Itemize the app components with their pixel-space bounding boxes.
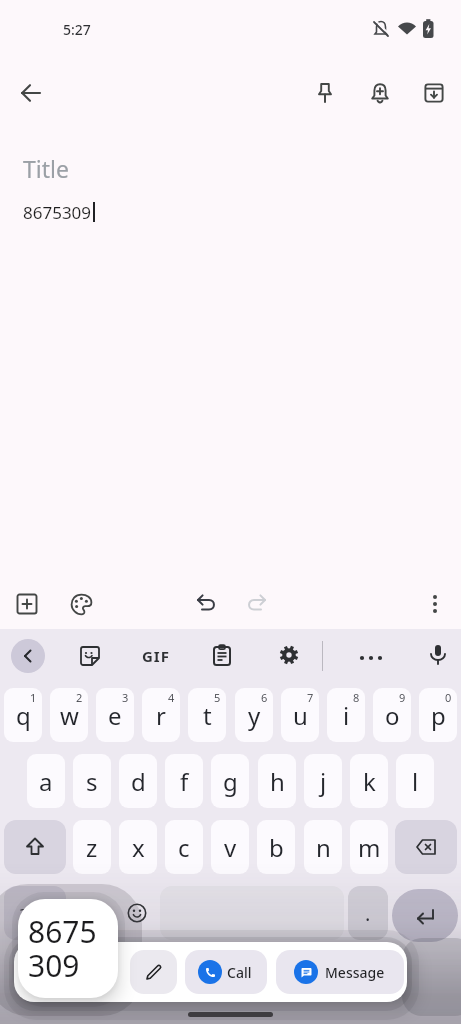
button[interactable]	[358, 645, 384, 671]
staticText: g	[223, 765, 238, 798]
staticText: q	[16, 699, 31, 732]
staticText: 5:27	[63, 20, 91, 39]
button[interactable]: a	[27, 754, 65, 808]
button[interactable]: o	[373, 688, 411, 742]
button[interactable]: r	[142, 688, 180, 742]
staticText: u	[293, 699, 308, 732]
staticText: r	[156, 699, 166, 732]
button[interactable]: y	[235, 688, 273, 742]
button[interactable]: m	[350, 820, 388, 874]
button[interactable]: p	[419, 688, 457, 742]
button[interactable]: u	[281, 688, 319, 742]
staticText: t	[203, 699, 212, 732]
staticText: 4	[168, 690, 175, 705]
button[interactable]: x	[119, 820, 157, 874]
button[interactable]: c	[165, 820, 203, 874]
staticText: e	[108, 699, 122, 732]
button[interactable]	[392, 889, 458, 942]
staticText: ?123	[20, 904, 51, 923]
staticText: j	[320, 765, 327, 798]
staticText: 5	[214, 690, 221, 705]
button[interactable]	[313, 81, 337, 105]
staticText: f	[180, 765, 189, 798]
staticText: z	[86, 831, 98, 864]
button[interactable]	[70, 593, 93, 616]
button[interactable]: g	[211, 754, 249, 808]
staticText: .	[365, 900, 371, 927]
button[interactable]: j	[304, 754, 342, 808]
button[interactable]: v	[211, 820, 249, 874]
button[interactable]	[422, 81, 446, 105]
button[interactable]	[426, 643, 450, 667]
button[interactable]	[130, 950, 177, 994]
staticText: a	[39, 765, 53, 798]
button[interactable]: Call	[185, 950, 267, 994]
staticText: x	[132, 831, 145, 864]
staticText: b	[269, 831, 284, 864]
staticText: Title	[23, 153, 69, 184]
staticText: s	[86, 765, 98, 798]
staticText: 1	[30, 690, 37, 705]
staticText: 8	[353, 690, 360, 705]
button[interactable]	[79, 645, 101, 667]
button[interactable]: f	[165, 754, 203, 808]
button[interactable]	[395, 820, 457, 874]
staticText: k	[363, 765, 376, 798]
button[interactable]: q	[4, 688, 42, 742]
button[interactable]	[211, 644, 233, 666]
staticText: ,	[90, 900, 96, 927]
button[interactable]: z	[73, 820, 111, 874]
staticText: c	[178, 831, 190, 864]
button[interactable]: n	[304, 820, 342, 874]
button[interactable]: Message	[276, 950, 404, 994]
button[interactable]: b	[257, 820, 295, 874]
staticText: 6	[261, 690, 268, 705]
staticText: 8675 309	[28, 911, 97, 985]
button[interactable]: GIF	[138, 645, 174, 667]
staticText: y	[248, 699, 261, 732]
staticText: 0	[445, 690, 452, 705]
button[interactable]	[193, 592, 217, 616]
button[interactable]	[368, 81, 392, 105]
button[interactable]	[117, 886, 157, 940]
staticText: 8675309	[23, 201, 92, 224]
button[interactable]	[423, 592, 447, 616]
staticText: d	[131, 765, 146, 798]
button[interactable]: s	[73, 754, 111, 808]
button[interactable]: l	[396, 754, 434, 808]
button[interactable]: d	[119, 754, 157, 808]
staticText: i	[343, 699, 350, 732]
staticText: h	[270, 765, 285, 798]
button[interactable]: ,	[73, 886, 113, 940]
staticText: Message	[325, 963, 385, 982]
button[interactable]: .	[348, 886, 388, 940]
staticText: w	[60, 699, 79, 732]
button[interactable]	[16, 593, 38, 615]
button[interactable]	[11, 639, 45, 673]
staticText: 2	[76, 690, 83, 705]
staticText: GIF	[142, 646, 170, 666]
staticText: l	[412, 765, 419, 798]
staticText: 7	[307, 690, 314, 705]
staticText: o	[385, 699, 400, 732]
button[interactable]	[4, 820, 66, 874]
button[interactable]: i	[327, 688, 365, 742]
staticText: p	[431, 699, 446, 732]
staticText: 3	[122, 690, 129, 705]
staticText: Call	[227, 963, 252, 982]
button[interactable]	[246, 592, 270, 616]
button[interactable]	[160, 886, 344, 940]
button[interactable]	[278, 644, 300, 666]
button[interactable]	[19, 81, 43, 105]
button[interactable]: w	[50, 688, 88, 742]
button[interactable]: t	[188, 688, 226, 742]
button[interactable]: k	[350, 754, 388, 808]
staticText: v	[224, 831, 237, 864]
staticText: n	[316, 831, 331, 864]
button[interactable]: 8675 309	[18, 899, 118, 998]
staticText: m	[358, 831, 381, 864]
button[interactable]: ?123	[4, 886, 66, 940]
staticText: 9	[399, 690, 406, 705]
button[interactable]: h	[258, 754, 296, 808]
button[interactable]: e	[96, 688, 134, 742]
